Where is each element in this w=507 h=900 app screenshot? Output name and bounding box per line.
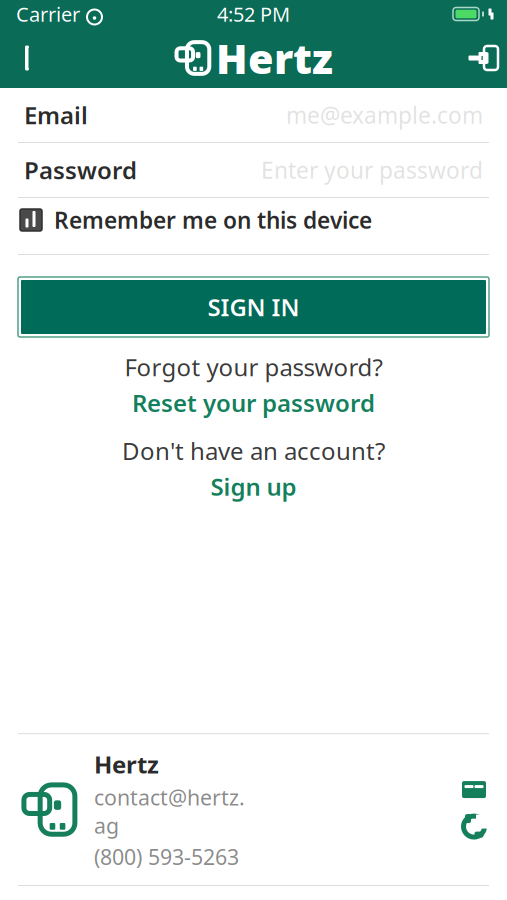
staticText: Hertz <box>94 748 159 780</box>
staticText: Don't have an account? <box>122 435 385 467</box>
staticText: contact@hertz.ag <box>94 783 245 840</box>
button[interactable]: Remember me on this device <box>0 198 507 242</box>
button[interactable]: Back <box>0 30 54 86</box>
button[interactable]: Call us <box>461 814 487 840</box>
staticText: SIGN IN <box>207 291 299 323</box>
staticText: 4:52 PM <box>217 1 290 27</box>
staticText: Email <box>24 99 88 131</box>
staticText: Sign up <box>210 471 296 502</box>
staticText: (800) 593-5263 <box>94 843 239 871</box>
button[interactable]: Sign up <box>210 469 296 504</box>
staticText: Hertz <box>216 31 333 85</box>
staticText: Enter your password <box>261 155 483 185</box>
button[interactable]: SIGN IN <box>0 277 507 337</box>
staticText: Reset your password <box>132 387 375 419</box>
staticText: Password <box>24 154 137 186</box>
staticText: Forgot your password? <box>124 351 382 383</box>
staticText: Remember me on this device <box>54 205 372 235</box>
staticText: Carrier <box>16 1 80 27</box>
button[interactable]: Sign in <box>453 30 507 86</box>
button[interactable]: Email us <box>461 780 487 800</box>
staticText: me@example.com <box>286 100 483 130</box>
button[interactable]: Reset your password <box>132 385 375 421</box>
